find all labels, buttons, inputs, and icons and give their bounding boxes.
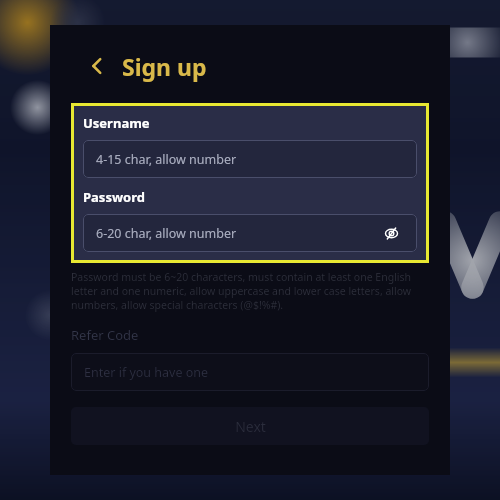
staticText: Username <box>83 114 150 132</box>
button[interactable]: Show password <box>378 220 404 246</box>
staticText: Sign up <box>122 51 207 82</box>
staticText: Password <box>83 188 145 206</box>
button[interactable]: Enter if you have one <box>71 353 429 391</box>
button[interactable]: 4-15 char, allow number <box>83 140 417 178</box>
button[interactable]: 6-20 char, allow number <box>83 214 417 252</box>
staticText: 4-15 char, allow number <box>96 151 237 168</box>
button[interactable]: Back <box>80 49 114 83</box>
staticText: Refer Code <box>71 326 139 344</box>
staticText: Next <box>235 417 266 436</box>
staticText: Enter if you have one <box>84 364 209 381</box>
staticText: 6-20 char, allow number <box>96 225 237 242</box>
staticText: Password must be 6~20 characters, must c… <box>71 270 429 312</box>
